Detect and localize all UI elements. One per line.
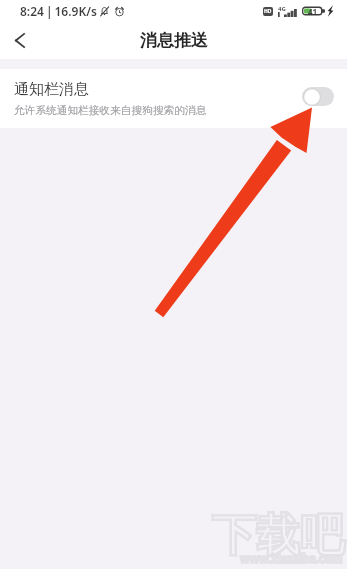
staticText: 消息推送: [140, 30, 208, 51]
staticText: 通知栏消息: [14, 80, 89, 99]
staticText: www.xiazaiba.com: [240, 551, 343, 567]
staticText: HD: [264, 8, 272, 15]
staticText: 下载吧: [212, 508, 344, 563]
button[interactable]: 通知栏消息: [0, 69, 347, 128]
staticText: 4G: [278, 5, 286, 13]
staticText: 41: [308, 6, 318, 17]
button[interactable]: Toggle notification messages: [302, 87, 334, 106]
button[interactable]: Back: [0, 22, 40, 59]
staticText: 8:24 | 16.9K/s: [20, 3, 97, 19]
staticText: 允许系统通知栏接收来自搜狗搜索的消息: [14, 104, 207, 117]
